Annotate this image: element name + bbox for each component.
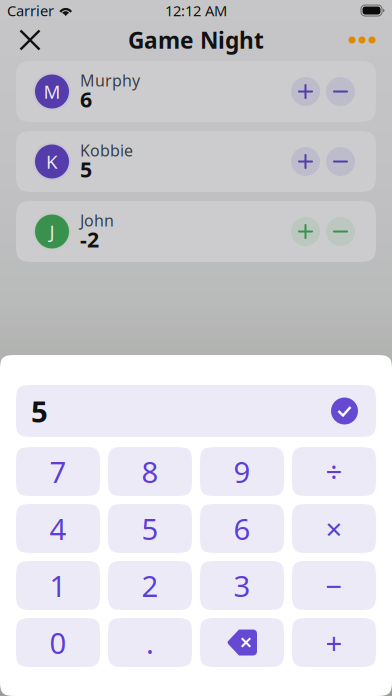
staticText: Kobbie <box>80 140 133 161</box>
staticText: Game Night <box>128 25 264 55</box>
button[interactable]: 2 <box>108 561 192 610</box>
staticText: + <box>325 623 342 662</box>
button[interactable]: Increase score for Kobbie <box>291 147 320 176</box>
staticText: K <box>46 149 58 174</box>
button[interactable]: − <box>292 561 376 610</box>
button[interactable]: × <box>292 504 376 553</box>
staticText: J <box>49 219 54 244</box>
staticText: M <box>43 79 60 104</box>
staticText: × <box>325 509 342 548</box>
staticText: Carrier <box>7 1 54 20</box>
staticText: 2 <box>141 566 158 605</box>
button[interactable]: Increase score for Murphy <box>291 77 320 106</box>
staticText: 5 <box>80 155 92 183</box>
button[interactable]: Confirm <box>331 397 358 424</box>
button[interactable]: 6 <box>200 504 284 553</box>
button[interactable]: Increase score for John <box>291 217 320 246</box>
staticText: 3 <box>233 566 250 605</box>
button[interactable]: + <box>292 618 376 667</box>
staticText: 8 <box>141 452 158 491</box>
button[interactable]: Decrease score for Murphy <box>326 77 355 106</box>
staticText: Murphy <box>80 70 140 91</box>
button[interactable]: Decrease score for Kobbie <box>326 147 355 176</box>
button[interactable]: 5 <box>108 504 192 553</box>
button[interactable]: 1 <box>16 561 100 610</box>
button[interactable]: 7 <box>16 447 100 496</box>
button[interactable]: 3 <box>200 561 284 610</box>
button[interactable]: Decrease score for John <box>326 217 355 246</box>
button[interactable]: Close <box>8 20 52 60</box>
staticText: 6 <box>80 85 92 113</box>
staticText: 9 <box>233 452 250 491</box>
staticText: 6 <box>233 509 250 548</box>
button[interactable] <box>200 618 284 667</box>
staticText: . <box>146 623 154 662</box>
staticText: John <box>80 210 114 231</box>
staticText: 0 <box>49 623 66 662</box>
staticText: 5 <box>31 391 48 430</box>
staticText: 5 <box>141 509 158 548</box>
staticText: 7 <box>49 452 66 491</box>
button[interactable]: ÷ <box>292 447 376 496</box>
button[interactable]: 4 <box>16 504 100 553</box>
button[interactable]: . <box>108 618 192 667</box>
staticText: 1 <box>49 566 66 605</box>
button[interactable]: 8 <box>108 447 192 496</box>
staticText: 4 <box>49 509 66 548</box>
button[interactable]: 0 <box>16 618 100 667</box>
staticText: ÷ <box>325 452 342 491</box>
button[interactable]: More options <box>340 20 384 60</box>
staticText: 12:12 AM <box>165 1 227 20</box>
staticText: − <box>325 566 342 605</box>
staticText: -2 <box>80 225 99 253</box>
button[interactable]: 9 <box>200 447 284 496</box>
